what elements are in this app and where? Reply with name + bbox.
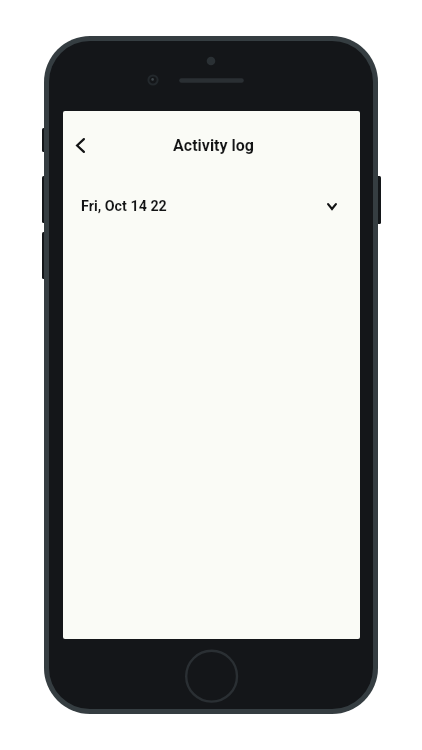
staticText: Fri, Oct 14 22 xyxy=(81,198,167,215)
button[interactable]: Back xyxy=(63,128,97,162)
staticText: Activity log xyxy=(65,136,360,155)
other: Expand day xyxy=(327,203,337,210)
button[interactable]: Fri, Oct 14 22 xyxy=(63,184,360,228)
